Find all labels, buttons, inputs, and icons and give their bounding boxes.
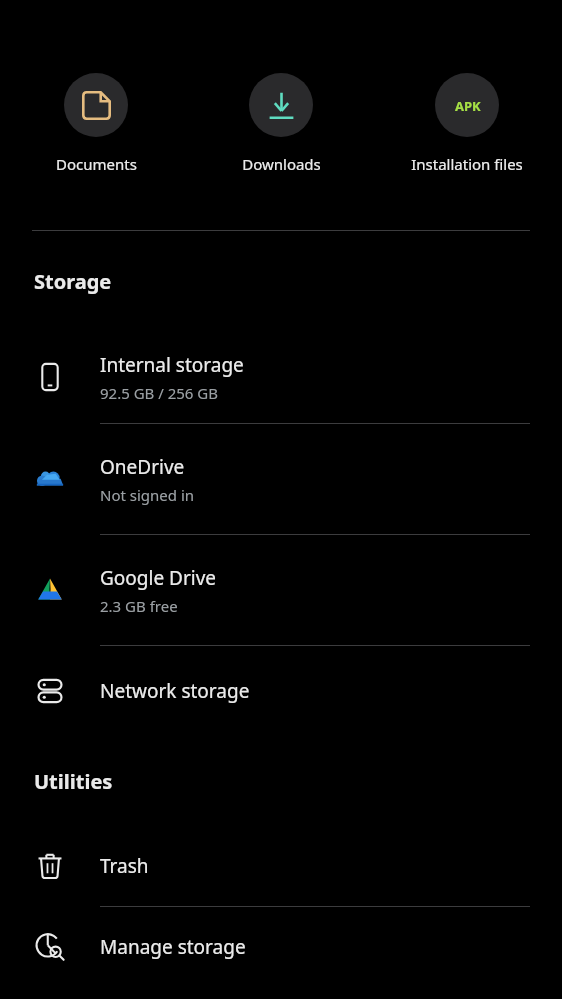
staticText: Google Drive <box>100 565 217 591</box>
staticText: 2.3 GB free <box>100 596 178 616</box>
staticText: Installation files <box>411 154 523 174</box>
button[interactable]: Manage storage <box>0 907 562 987</box>
staticText: APK <box>455 97 481 115</box>
button[interactable]: Internal storage <box>0 331 562 423</box>
staticText: Storage <box>34 268 112 295</box>
button[interactable]: Network storage <box>0 646 562 736</box>
staticText: OneDrive <box>100 454 185 480</box>
button[interactable]: Trash <box>0 826 562 906</box>
staticText: Documents <box>56 154 137 174</box>
button[interactable]: Installation files shortcut <box>377 73 557 174</box>
button[interactable]: OneDrive <box>0 424 562 534</box>
staticText: Trash <box>100 853 149 879</box>
staticText: Utilities <box>34 768 113 795</box>
staticText: Network storage <box>100 678 250 704</box>
button[interactable]: Downloads shortcut <box>191 73 371 174</box>
staticText: Internal storage <box>100 352 244 378</box>
staticText: Not signed in <box>100 485 195 505</box>
staticText: Downloads <box>242 154 321 174</box>
staticText: 92.5 GB / 256 GB <box>100 383 219 403</box>
button[interactable]: Documents shortcut <box>6 73 186 174</box>
staticText: Manage storage <box>100 934 246 960</box>
button[interactable]: Google Drive <box>0 535 562 645</box>
